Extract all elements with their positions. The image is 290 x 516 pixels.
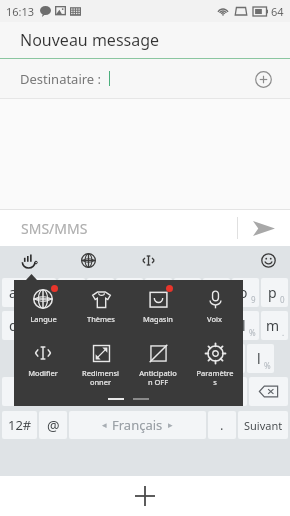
button[interactable]: q: [2, 311, 28, 340]
button[interactable]: v: [133, 377, 160, 406]
button[interactable]: b: [162, 377, 189, 406]
staticText: Langue: [30, 314, 57, 324]
button[interactable]: e: [58, 278, 85, 307]
button[interactable]: i: [203, 278, 230, 307]
button[interactable]: o: [232, 278, 259, 307]
button[interactable]: h: [145, 311, 172, 340]
button[interactable]: l: [247, 344, 274, 373]
button[interactable]: c: [104, 377, 131, 406]
button[interactable]: [2, 377, 42, 406]
staticText: h: [152, 316, 161, 335]
staticText: %: [264, 360, 271, 371]
button[interactable]: Langue: [58, 246, 118, 274]
staticText: :: [241, 393, 244, 404]
button[interactable]: Suivant: [238, 411, 288, 439]
staticText: c: [112, 382, 119, 401]
staticText: z: [38, 283, 45, 302]
button[interactable]: y: [145, 278, 172, 307]
staticText: q: [9, 316, 18, 335]
button[interactable]: Menu clavier: [0, 246, 58, 274]
button[interactable]: f: [102, 344, 129, 373]
button[interactable]: m: [261, 311, 288, 340]
button[interactable]: Emoji: [246, 246, 290, 274]
button[interactable]: g: [131, 344, 158, 373]
button[interactable]: Ajouter un destinataire: [250, 66, 276, 92]
staticText: k: [211, 316, 219, 335]
button[interactable]: z: [30, 278, 56, 307]
button[interactable]: t: [116, 278, 143, 307]
staticText: Nouveau message: [20, 29, 160, 51]
button[interactable]: SMS/MMS: [0, 210, 237, 246]
button[interactable]: q: [15, 344, 42, 373]
staticText: -: [152, 360, 155, 371]
button[interactable]: [249, 377, 288, 406]
staticText: @: [47, 416, 60, 435]
staticText: 9: [251, 294, 256, 305]
button[interactable]: ': [220, 377, 247, 406]
button[interactable]: s: [44, 344, 71, 373]
button[interactable]: @: [39, 411, 67, 439]
button[interactable]: h: [160, 344, 187, 373]
button[interactable]: Magasin: [129, 280, 186, 334]
button[interactable]: k: [218, 344, 245, 373]
button[interactable]: Thèmes: [72, 280, 129, 334]
button[interactable]: ◂: [69, 411, 206, 439]
staticText: .: [282, 327, 285, 338]
staticText: 16:13: [6, 4, 35, 19]
staticText: l: [242, 316, 246, 335]
button[interactable]: s: [30, 311, 56, 340]
button[interactable]: a: [2, 278, 28, 307]
button[interactable]: 12#: [2, 411, 37, 439]
button[interactable]: Modifier: [14, 334, 72, 392]
staticText: k: [226, 349, 234, 368]
staticText: Magasin: [143, 314, 173, 324]
button[interactable]: l: [232, 311, 259, 340]
staticText: m: [266, 316, 280, 335]
button[interactable]: Modifier: [118, 246, 178, 274]
button[interactable]: u: [174, 278, 201, 307]
staticText: Destinataire :: [20, 70, 102, 88]
button[interactable]: Redimensi onner: [72, 334, 129, 392]
button[interactable]: Accueil: [128, 479, 162, 513]
button[interactable]: Langue: [14, 280, 72, 334]
button[interactable]: d: [73, 344, 100, 373]
button[interactable]: x: [74, 377, 102, 406]
button[interactable]: r: [87, 278, 114, 307]
staticText: Français: [112, 416, 163, 434]
button[interactable]: k: [203, 311, 230, 340]
button[interactable]: .: [208, 411, 236, 439]
button[interactable]: Voix: [186, 280, 243, 334]
button[interactable]: j: [189, 344, 216, 373]
button[interactable]: Envoyer: [238, 210, 290, 246]
button[interactable]: p: [261, 278, 288, 307]
button[interactable]: Paramètre s: [186, 334, 243, 392]
button[interactable]: n: [191, 377, 218, 406]
button[interactable]: Anticipatio n OFF: [129, 334, 186, 392]
button[interactable]: f: [87, 311, 114, 340]
staticText: .: [220, 416, 224, 434]
staticText: i: [213, 283, 217, 302]
staticText: y: [153, 283, 161, 302]
